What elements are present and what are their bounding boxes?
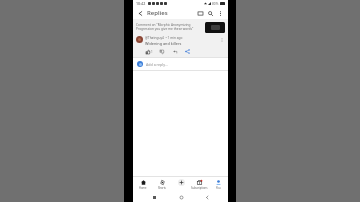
staticText: Shorts [158,186,166,190]
button[interactable]: Cast [196,9,205,18]
staticText: Subscriptions [191,186,208,190]
button[interactable]: More options [216,9,225,18]
button[interactable]: Subscriptions [190,177,208,192]
button[interactable]: Back [202,192,212,202]
button[interactable]: Reply [171,48,178,55]
button[interactable]: You [209,177,227,192]
button[interactable]: Search [206,9,215,18]
button[interactable]: Share [184,48,191,55]
button[interactable]: Back [136,9,145,18]
staticText: 10:42 [136,1,146,6]
staticText: Widening and killers [145,41,182,46]
button[interactable]: Create [172,177,190,192]
button[interactable]: Add a reply... [133,58,228,70]
staticText: @Thatnguy4 • 1 min ago [145,36,183,40]
button[interactable]: Shorts [153,177,171,192]
button[interactable]: Home [134,177,152,192]
staticText: Replies [147,9,168,17]
staticText: Home [139,186,147,190]
button[interactable]: Home [176,192,186,202]
button[interactable]: More options for comment [218,36,225,43]
staticText: 1 [151,50,153,54]
button[interactable]: Dislike [158,48,165,55]
button[interactable]: @Thatnguy4 • 1 min ago [133,35,228,57]
button[interactable]: Recent apps [149,192,159,202]
staticText: You [216,186,221,190]
staticText: Comment on "Morphic Anonymizing Progress… [136,23,203,31]
staticText: 80% [212,2,219,6]
staticText: Add a reply... [146,62,168,67]
button[interactable]: Like [144,48,151,55]
button[interactable]: Comment on "Morphic Anonymizing Progress… [133,19,228,35]
